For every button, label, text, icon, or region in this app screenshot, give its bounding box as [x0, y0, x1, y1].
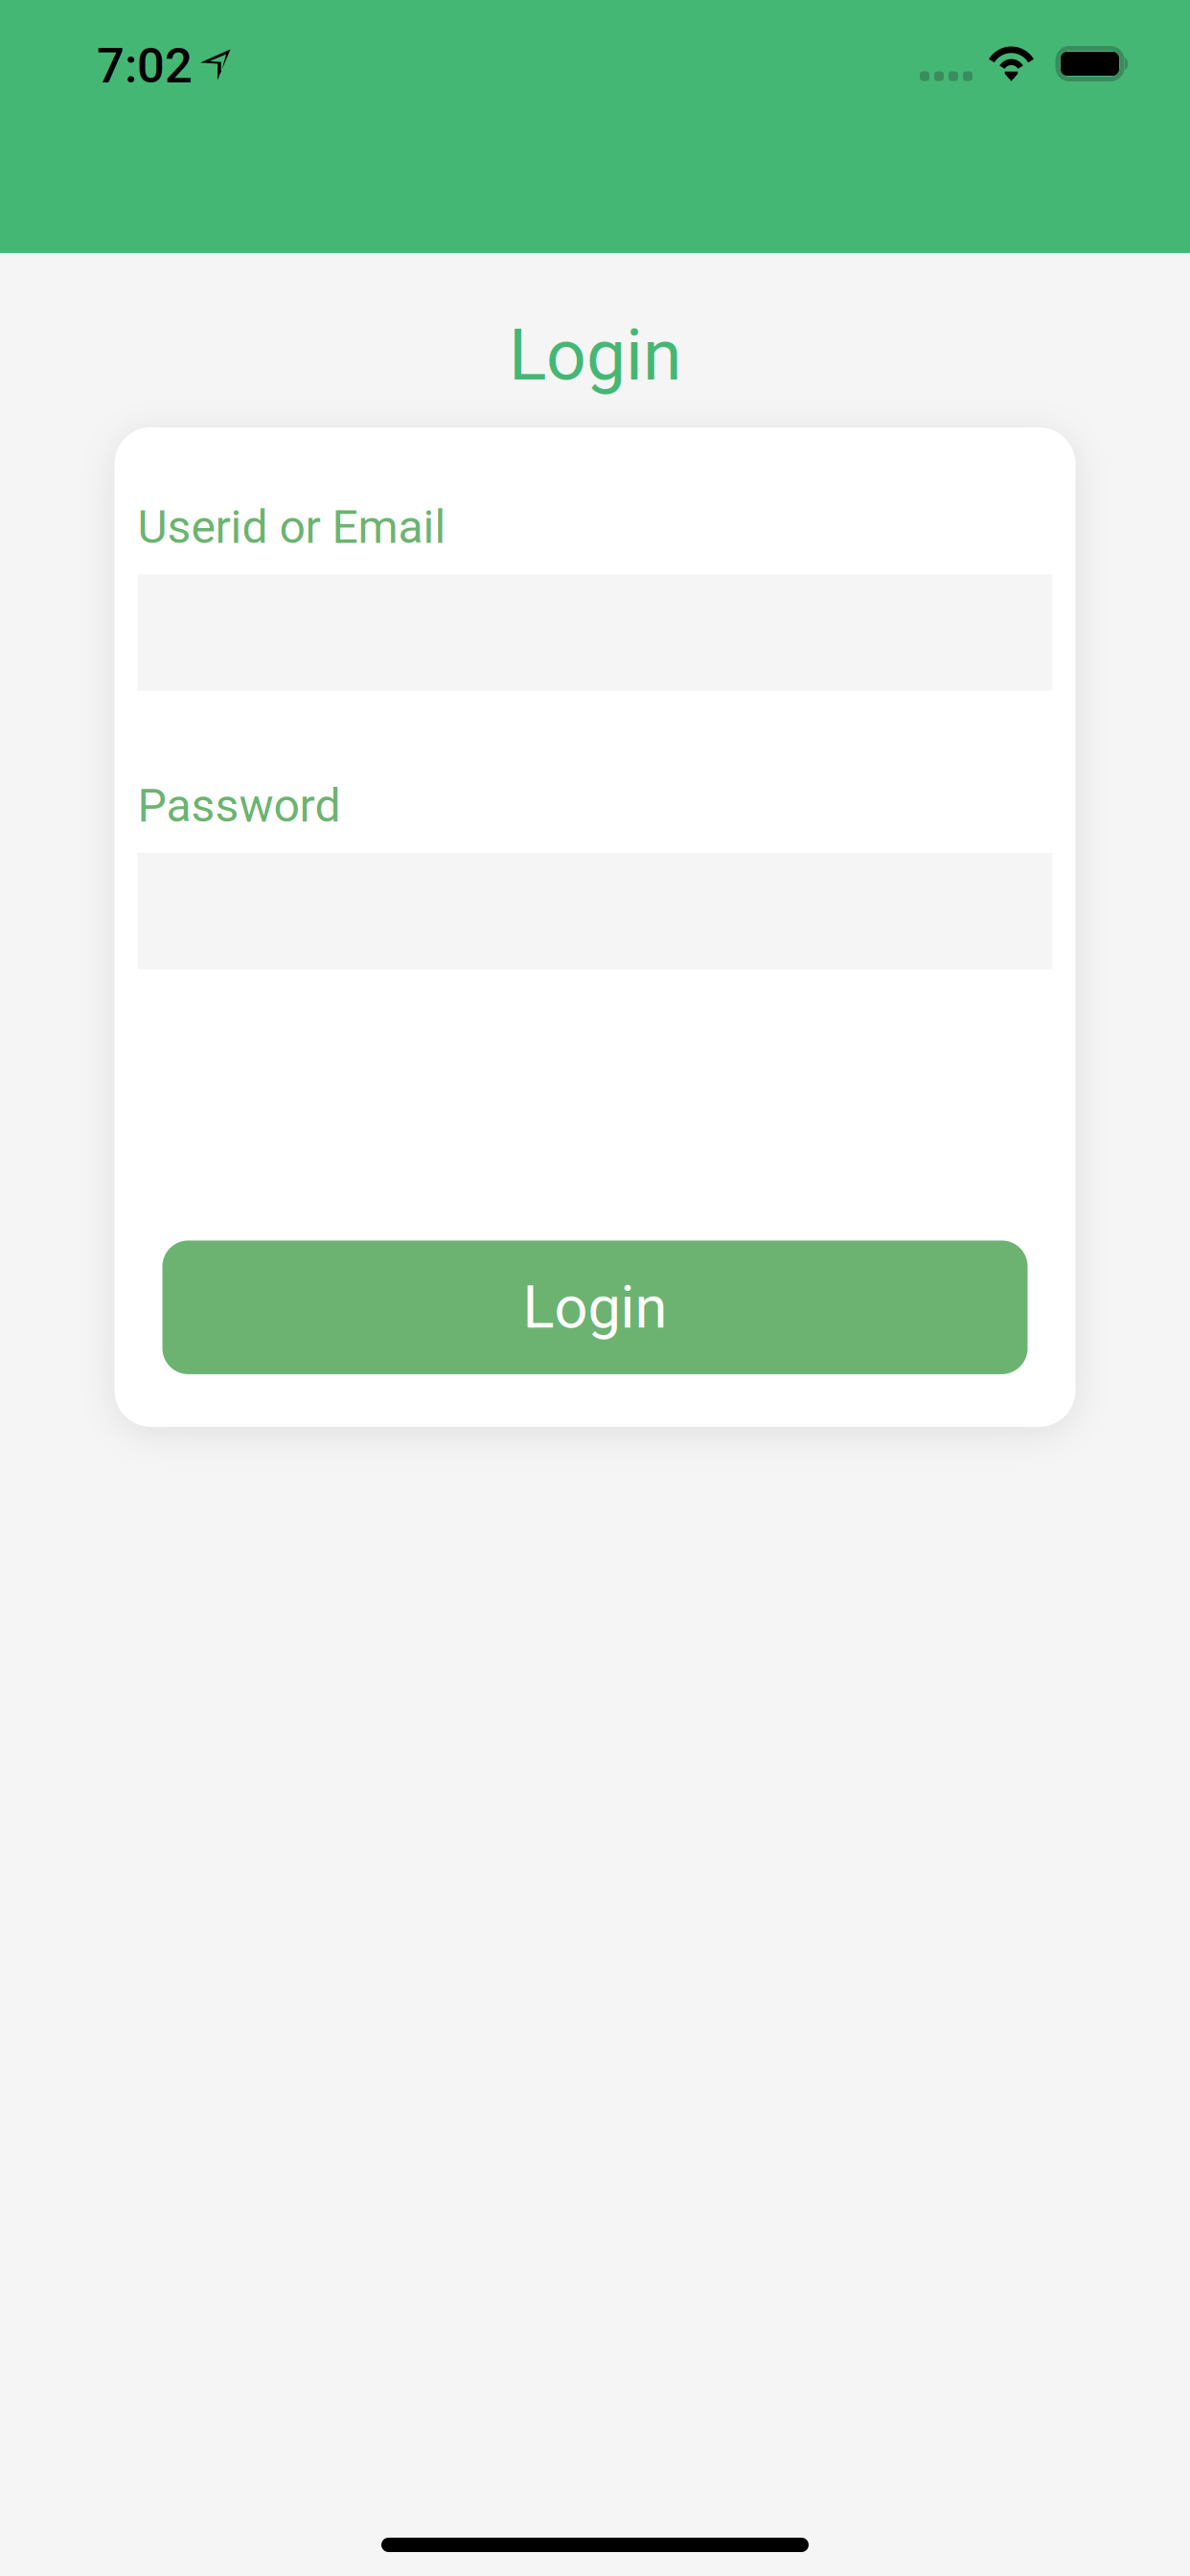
staticText: 7:02 — [97, 37, 193, 94]
button[interactable]: Login — [162, 1240, 1028, 1374]
staticText: Password — [137, 779, 341, 833]
staticText: Login — [523, 1273, 667, 1342]
staticText: Userid or Email — [137, 500, 446, 554]
staticText: Login — [509, 314, 681, 397]
